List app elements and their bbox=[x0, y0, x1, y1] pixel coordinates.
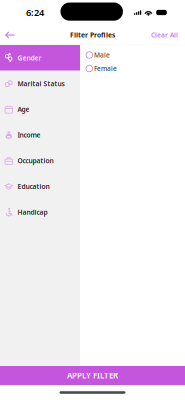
button[interactable]: APPLY FILTER bbox=[0, 366, 185, 385]
button[interactable]: Marital Status bbox=[0, 71, 80, 96]
button[interactable]: Female bbox=[86, 62, 185, 75]
staticText: APPLY FILTER bbox=[67, 370, 118, 381]
staticText: Occupation bbox=[17, 156, 53, 165]
staticText: Handicap bbox=[17, 208, 47, 216]
staticText: Age bbox=[17, 105, 29, 114]
button[interactable]: Male bbox=[86, 48, 185, 61]
button[interactable]: Education bbox=[0, 173, 80, 199]
staticText: Marital Status bbox=[17, 79, 64, 88]
button[interactable]: Income bbox=[0, 122, 80, 148]
button[interactable]: Handicap bbox=[0, 199, 80, 225]
staticText: Male bbox=[94, 51, 110, 59]
button[interactable]: Clear All bbox=[146, 28, 185, 42]
staticText: Education bbox=[17, 182, 49, 191]
staticText: Filter Profiles bbox=[70, 31, 115, 39]
button[interactable]: Back bbox=[0, 28, 20, 42]
staticText: Gender bbox=[17, 53, 41, 62]
button[interactable]: Gender bbox=[0, 45, 80, 71]
staticText: Clear All bbox=[151, 31, 178, 39]
staticText: 6:24 bbox=[26, 6, 44, 19]
button[interactable]: Occupation bbox=[0, 148, 80, 173]
staticText: Income bbox=[17, 130, 40, 139]
staticText: Female bbox=[94, 64, 117, 73]
button[interactable]: Age bbox=[0, 96, 80, 122]
